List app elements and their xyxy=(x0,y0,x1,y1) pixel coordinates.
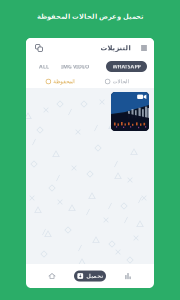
button[interactable]: WHATSAPP xyxy=(106,61,147,72)
button[interactable]: المحفوظة xyxy=(46,76,75,87)
button[interactable]: تحميل xyxy=(74,270,106,281)
staticText: المحفوظة xyxy=(53,78,75,85)
button[interactable]: Menu xyxy=(138,41,150,55)
staticText: WHATSAPP xyxy=(112,63,140,70)
staticText: تحميل xyxy=(86,273,103,279)
button[interactable]: ALL xyxy=(30,60,58,73)
staticText: تحميل وعرض الحالات المحفوظة xyxy=(36,13,143,20)
button[interactable]: Select items xyxy=(30,39,48,57)
staticText: التنزيلات xyxy=(100,44,130,52)
button[interactable]: IMG VIDEO xyxy=(58,60,92,73)
staticText: ALL xyxy=(39,63,49,70)
button[interactable]: الحالات xyxy=(105,76,128,87)
staticText: IMG VIDEO xyxy=(61,63,89,70)
button[interactable]: Home xyxy=(30,264,74,288)
staticText: الحالات xyxy=(112,78,128,85)
button[interactable]: Statistics xyxy=(106,264,150,288)
